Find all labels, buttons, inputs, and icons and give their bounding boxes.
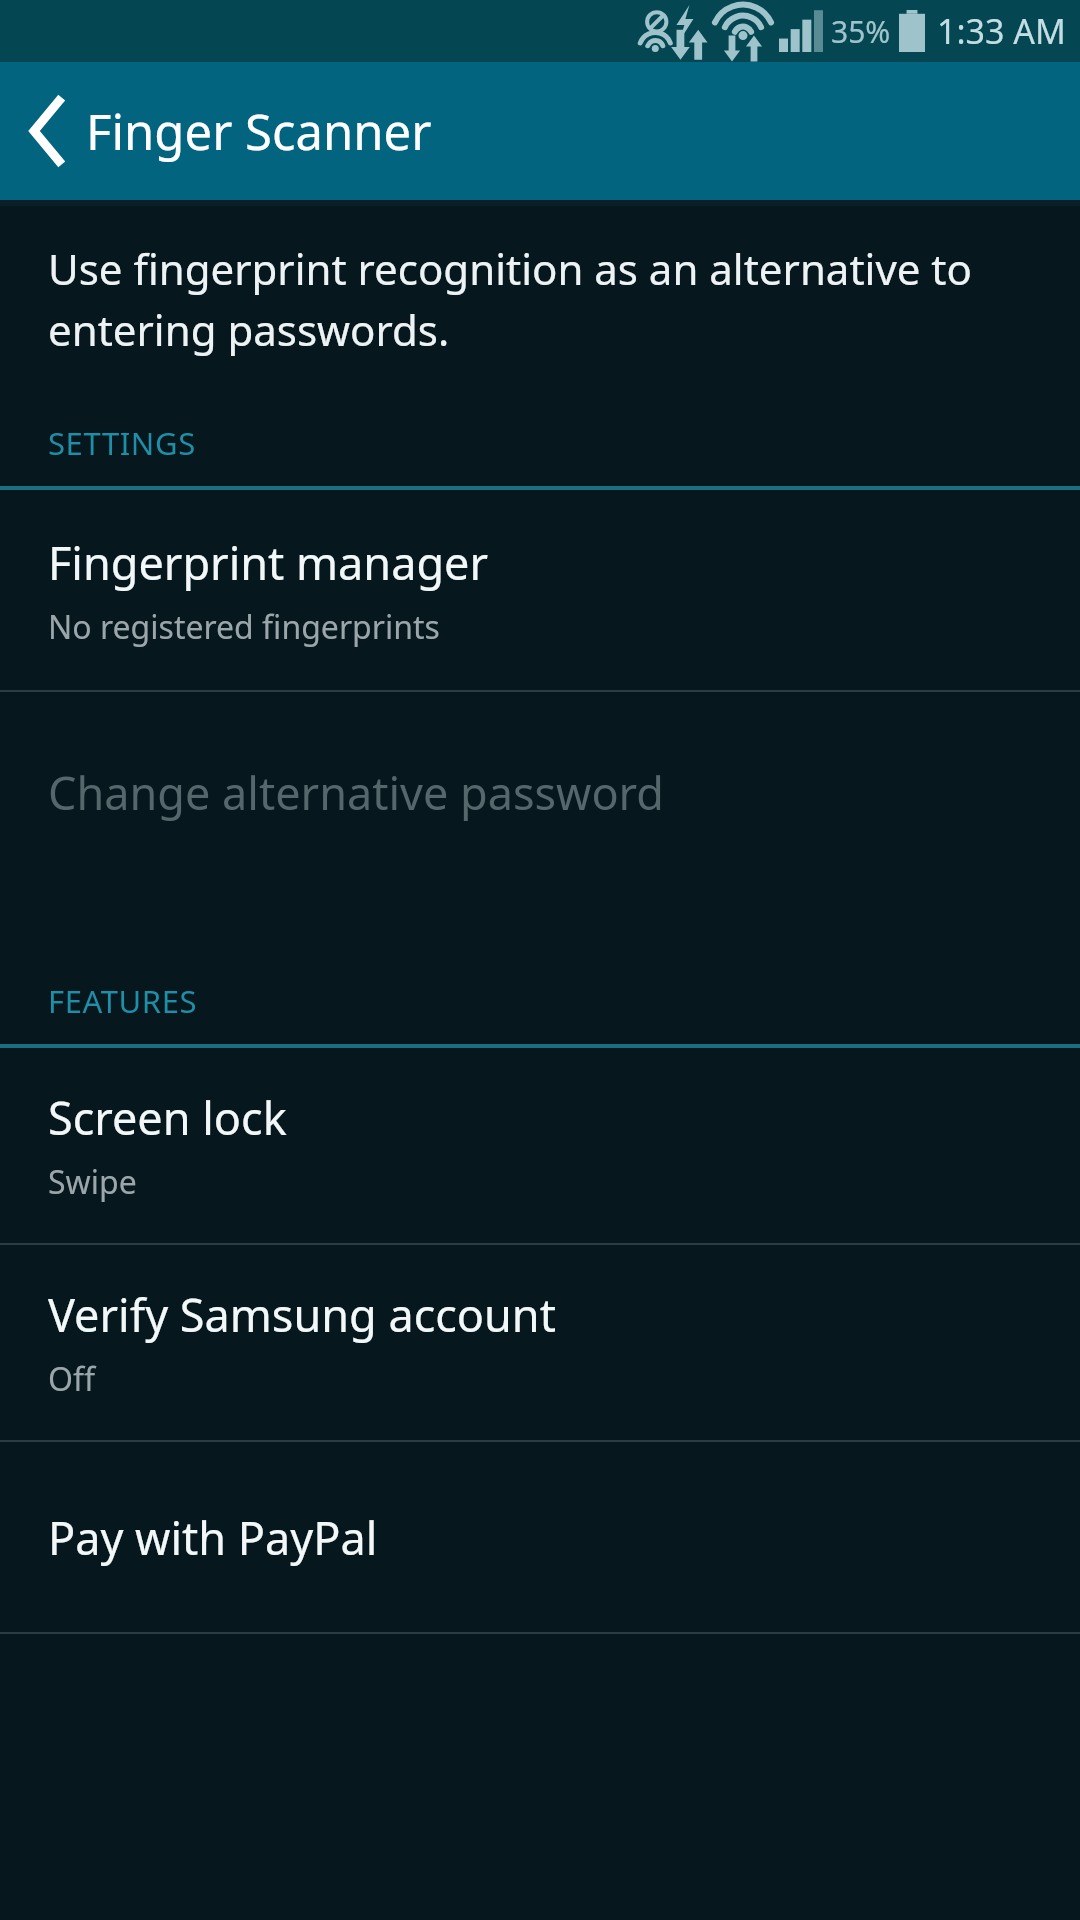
- staticText: Use fingerprint recognition as an altern…: [48, 240, 1024, 358]
- staticText: FEATURES: [48, 980, 198, 1022]
- button[interactable]: Pay with PayPal: [0, 1442, 1080, 1632]
- button[interactable]: Change alternative password: [0, 692, 1080, 892]
- staticText: Fingerprint manager: [48, 532, 489, 593]
- staticText: Off: [48, 1357, 96, 1401]
- staticText: SETTINGS: [48, 422, 196, 464]
- button[interactable]: Fingerprint manager: [0, 490, 1080, 690]
- staticText: Screen lock: [48, 1087, 287, 1148]
- button[interactable]: Verify Samsung account: [0, 1245, 1080, 1440]
- button[interactable]: Screen lock: [0, 1048, 1080, 1243]
- staticText: Pay with PayPal: [48, 1507, 378, 1568]
- staticText: Finger Scanner: [86, 98, 432, 165]
- button[interactable]: Back: Finger Scanner: [0, 62, 1080, 200]
- staticText: 35%: [831, 11, 891, 52]
- staticText: Change alternative password: [48, 762, 664, 823]
- staticText: No registered fingerprints: [48, 605, 440, 649]
- staticText: Swipe: [48, 1160, 137, 1204]
- staticText: 1:33 AM: [937, 8, 1066, 54]
- staticText: Verify Samsung account: [48, 1284, 556, 1345]
